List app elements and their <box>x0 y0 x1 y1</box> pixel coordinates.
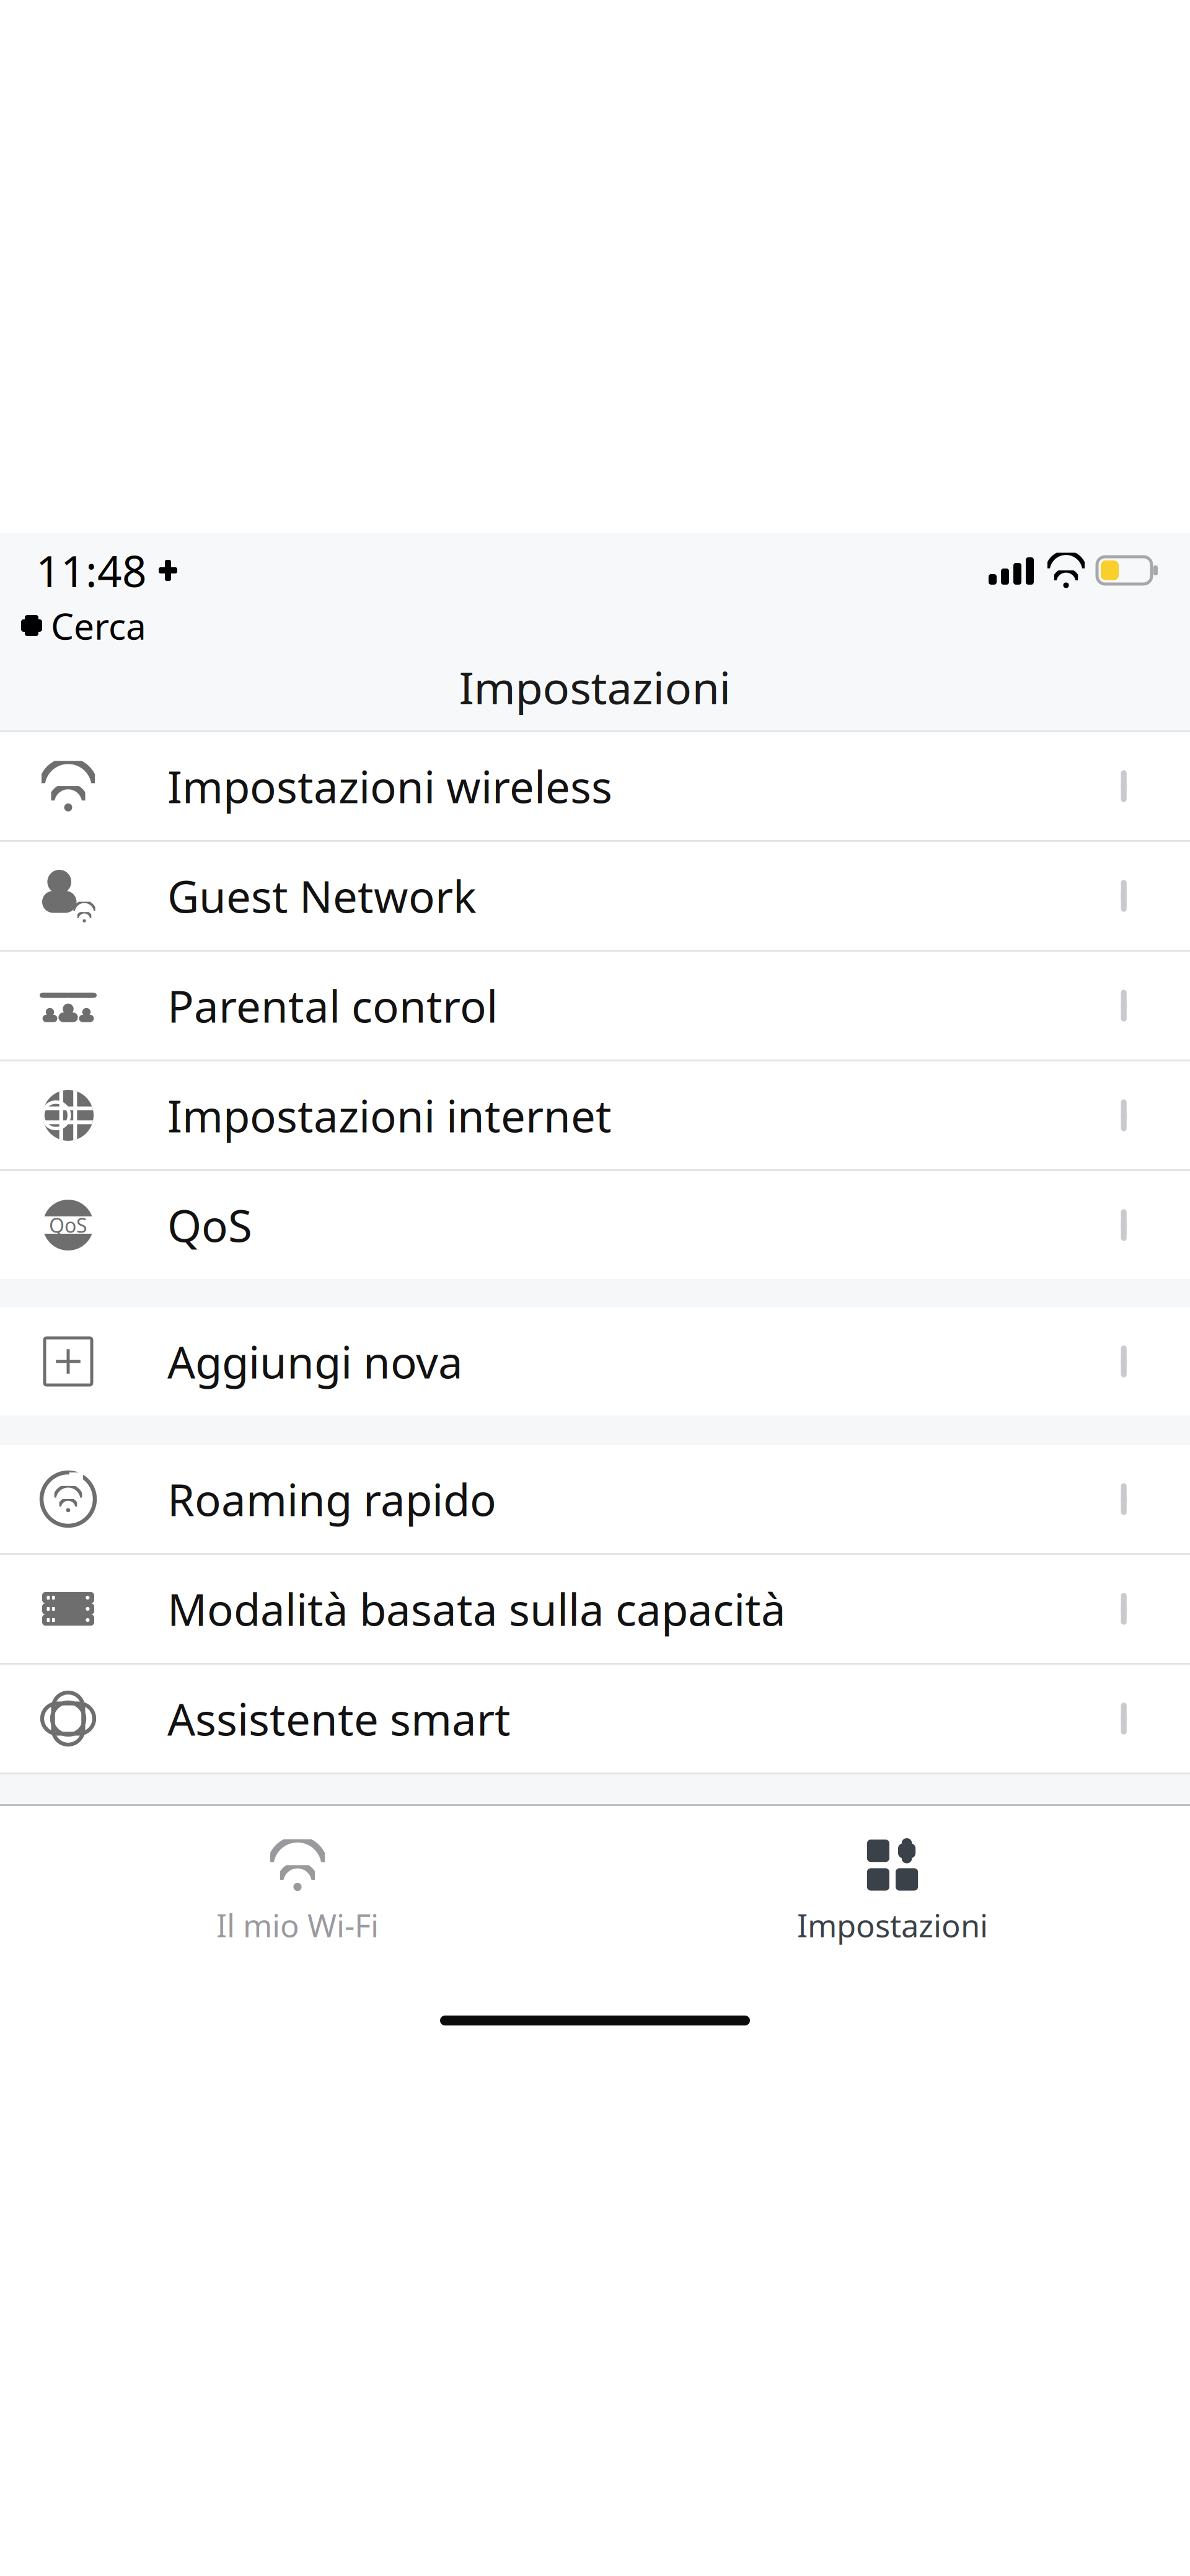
staticText: Impostazioni <box>459 657 731 717</box>
staticText: Il mio Wi-Fi <box>216 1904 379 1946</box>
button[interactable]: Roaming rapido <box>0 1445 1190 1553</box>
button[interactable]: Aggiungi nova <box>0 1308 1190 1415</box>
button[interactable]: Impostazioni wireless <box>0 732 1190 840</box>
button[interactable]: Cerca <box>0 608 1190 644</box>
staticText: Impostazioni wireless <box>167 757 612 815</box>
button[interactable]: Impostazioni internet <box>0 1061 1190 1169</box>
button[interactable]: Assistente smart <box>0 1665 1190 1773</box>
staticText: Guest Network <box>167 867 477 925</box>
staticText: Impostazioni internet <box>167 1086 612 1144</box>
button[interactable]: Parental control <box>0 952 1190 1060</box>
staticText: Modalità basata sulla capacità <box>167 1580 786 1638</box>
staticText: 11:48 <box>36 542 147 599</box>
staticText: Impostazioni <box>797 1904 988 1946</box>
button[interactable]: Guest Network <box>0 842 1190 950</box>
staticText: Parental control <box>167 977 498 1035</box>
staticText: QoS <box>49 1212 87 1238</box>
button[interactable]: Modalità basata sulla capacità <box>0 1555 1190 1663</box>
staticText: Roaming rapido <box>167 1470 496 1528</box>
staticText: QoS <box>167 1196 252 1254</box>
staticText: Assistente smart <box>167 1689 511 1748</box>
button[interactable]: Impostazioni <box>595 1828 1190 1959</box>
staticText: Aggiungi nova <box>167 1332 463 1391</box>
button[interactable]: Il mio Wi-Fi <box>0 1828 595 1959</box>
button[interactable]: QoS <box>0 1171 1190 1279</box>
staticText: Cerca <box>51 601 146 650</box>
